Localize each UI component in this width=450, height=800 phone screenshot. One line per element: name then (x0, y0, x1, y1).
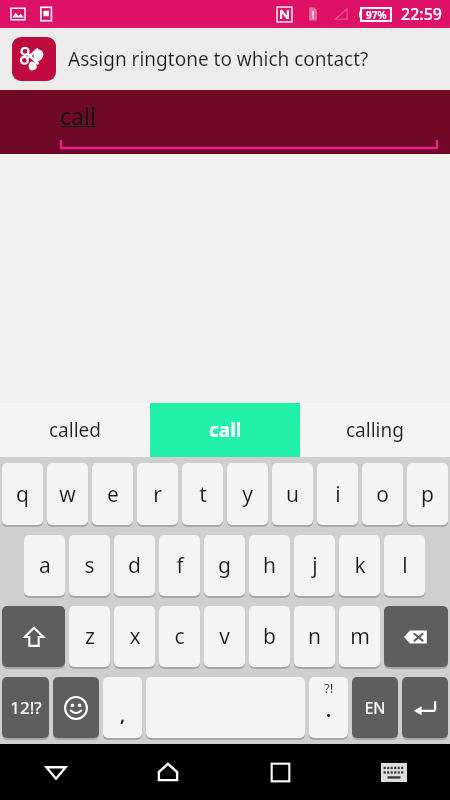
staticText: a (39, 551, 51, 580)
staticText: v (219, 622, 230, 651)
button[interactable]: calling (300, 403, 450, 457)
button[interactable]: , (103, 677, 142, 738)
staticText: call (60, 100, 96, 131)
button[interactable]: Switch keyboard (337, 744, 450, 800)
button[interactable] (53, 677, 99, 738)
other: Emoji (51, 673, 101, 744)
button[interactable]: Recent apps (224, 744, 337, 800)
staticText: x (129, 622, 141, 651)
button[interactable]: 12!? (2, 677, 49, 738)
staticText: Assign ringtone to which contact? (68, 46, 369, 72)
staticText: i (335, 480, 341, 509)
staticText: q (16, 480, 29, 509)
button[interactable]: e (92, 463, 133, 525)
staticText: r (153, 480, 162, 509)
staticText: m (350, 622, 370, 651)
staticText: call (209, 417, 242, 443)
button[interactable] (384, 606, 448, 667)
staticText: . (326, 698, 332, 723)
button[interactable]: Back (0, 744, 112, 800)
button[interactable]: v (204, 606, 245, 667)
staticText: d (128, 551, 141, 580)
button[interactable]: o (362, 463, 403, 525)
staticText: g (218, 551, 231, 580)
staticText: l (402, 551, 408, 580)
button[interactable]: ?! (309, 677, 348, 738)
button[interactable]: j (294, 535, 335, 596)
button[interactable]: s (69, 535, 110, 596)
button[interactable]: q (2, 463, 43, 525)
staticText: o (376, 480, 389, 509)
staticText: h (263, 551, 276, 580)
button[interactable]: y (227, 463, 268, 525)
button[interactable]: g (204, 535, 245, 596)
staticText: n (308, 622, 321, 651)
staticText: , (120, 703, 126, 728)
button[interactable]: d (114, 535, 155, 596)
staticText: EN (364, 697, 386, 719)
staticText: s (84, 551, 95, 580)
button[interactable]: a (24, 535, 65, 596)
staticText: f (176, 551, 184, 580)
button[interactable]: i (317, 463, 358, 525)
button[interactable]: t (182, 463, 223, 525)
button[interactable]: h (249, 535, 290, 596)
button[interactable] (2, 606, 65, 667)
staticText: c (174, 622, 185, 651)
button[interactable]: EN (352, 677, 398, 738)
button[interactable]: Home (112, 744, 224, 800)
button[interactable]: z (69, 606, 110, 667)
button[interactable]: x (114, 606, 155, 667)
staticText: u (286, 480, 299, 509)
staticText: b (263, 622, 276, 651)
button[interactable]: called (0, 403, 150, 457)
button[interactable]: l (384, 535, 425, 596)
staticText: 12!? (10, 696, 42, 719)
staticText: called (49, 417, 101, 443)
other: Enter (400, 673, 450, 744)
button[interactable]: call (150, 403, 300, 457)
button[interactable] (402, 677, 448, 738)
staticText: k (354, 551, 366, 580)
button[interactable]: p (407, 463, 448, 525)
staticText: y (242, 480, 253, 509)
other: Backspace (382, 602, 450, 673)
staticText: calling (346, 417, 404, 443)
other: Shift (0, 602, 67, 673)
staticText: w (59, 480, 76, 509)
other: Space (144, 673, 307, 744)
button[interactable]: c (159, 606, 200, 667)
button[interactable]: n (294, 606, 335, 667)
staticText: e (107, 480, 119, 509)
staticText: j (312, 551, 318, 580)
button[interactable]: r (137, 463, 178, 525)
button[interactable]: u (272, 463, 313, 525)
staticText: 22:59 (401, 3, 442, 25)
staticText: 97% (366, 8, 387, 22)
button[interactable]: f (159, 535, 200, 596)
button[interactable]: k (339, 535, 380, 596)
staticText: ?! (324, 679, 334, 697)
button[interactable]: b (249, 606, 290, 667)
button[interactable]: m (339, 606, 380, 667)
staticText: z (85, 622, 95, 651)
button[interactable]: w (47, 463, 88, 525)
staticText: p (421, 480, 434, 509)
staticText: t (199, 480, 207, 509)
